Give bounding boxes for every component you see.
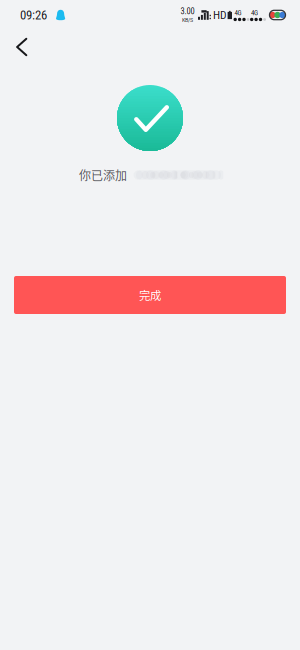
staticText: 4G — [251, 9, 258, 17]
button[interactable]: Back — [0, 30, 58, 64]
staticText: KB/S — [182, 16, 193, 24]
staticText: 09:26 — [20, 7, 47, 22]
staticText: 3.00 — [180, 6, 194, 16]
staticText: 你已添加 — [79, 166, 127, 184]
staticText: 完成 — [139, 287, 161, 303]
button[interactable]: 完成 — [14, 276, 286, 314]
staticText: HD — [213, 8, 227, 22]
staticText: 4G — [234, 9, 241, 17]
